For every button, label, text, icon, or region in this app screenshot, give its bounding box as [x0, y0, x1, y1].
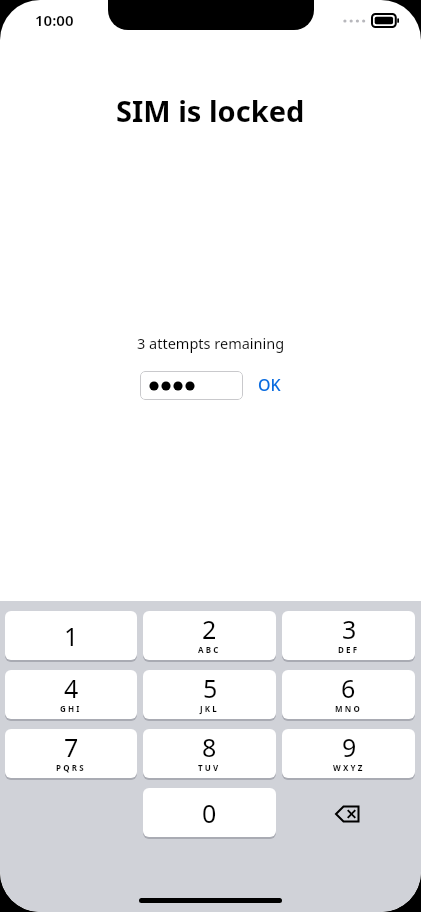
staticText: 6: [341, 671, 356, 705]
button[interactable]: 5: [143, 670, 276, 721]
button[interactable]: 6: [282, 670, 415, 721]
staticText: 8: [202, 730, 217, 764]
staticText: 2: [202, 612, 217, 646]
staticText: 5: [203, 671, 218, 705]
staticText: 7: [64, 730, 79, 764]
button[interactable]: [140, 371, 243, 400]
staticText: TUV: [198, 762, 221, 773]
button[interactable]: 1: [5, 611, 137, 662]
staticText: 0: [202, 796, 217, 830]
staticText: 10:00: [35, 10, 74, 30]
staticText: DEF: [338, 644, 360, 655]
staticText: ABC: [198, 644, 221, 655]
staticText: 1: [64, 619, 79, 653]
staticText: 3: [342, 612, 357, 646]
staticText: PQRS: [56, 762, 86, 773]
button[interactable]: 0: [143, 788, 276, 839]
staticText: OK: [258, 374, 281, 396]
staticText: 9: [342, 730, 357, 764]
staticText: 4: [64, 671, 79, 705]
button[interactable]: 3: [282, 611, 415, 662]
button[interactable]: OK: [256, 370, 283, 400]
button[interactable]: 7: [5, 729, 137, 780]
staticText: JKL: [200, 703, 220, 714]
button[interactable]: 4: [5, 670, 137, 721]
button[interactable]: 8: [143, 729, 276, 780]
staticText: MNO: [335, 703, 362, 714]
staticText: WXYZ: [333, 762, 365, 773]
staticText: SIM is locked: [116, 91, 305, 130]
button[interactable]: 2: [143, 611, 276, 662]
button[interactable]: Backspace: [282, 788, 415, 839]
staticText: 3 attempts remaining: [137, 333, 285, 353]
staticText: GHI: [60, 703, 82, 714]
button[interactable]: 9: [282, 729, 415, 780]
